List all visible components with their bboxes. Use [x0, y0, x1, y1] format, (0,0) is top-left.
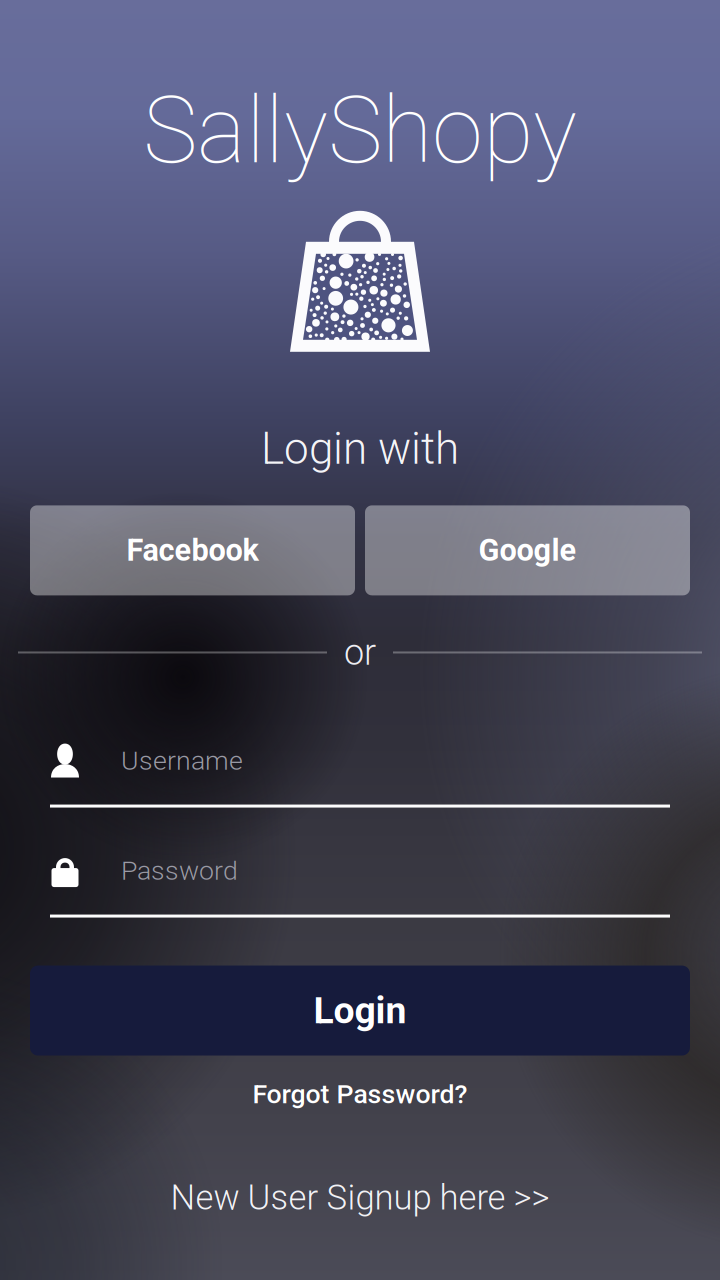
staticText: Google: [478, 532, 576, 568]
staticText: or: [344, 631, 376, 674]
staticText: SallyShopy: [143, 77, 577, 185]
staticText: Login with: [261, 423, 459, 474]
button[interactable]: Forgot Password?: [232, 1070, 487, 1119]
staticText: Login: [313, 989, 406, 1032]
staticText: Username: [121, 745, 243, 776]
staticText: Facebook: [126, 532, 258, 568]
staticText: Forgot Password?: [252, 1079, 467, 1110]
button[interactable]: Google: [365, 505, 690, 595]
staticText: New User Signup here >>: [170, 1177, 549, 1218]
staticText: Password: [121, 855, 238, 886]
button[interactable]: New User Signup here >>: [150, 1167, 569, 1228]
button[interactable]: Facebook: [30, 505, 355, 595]
button[interactable]: Login: [30, 966, 690, 1056]
